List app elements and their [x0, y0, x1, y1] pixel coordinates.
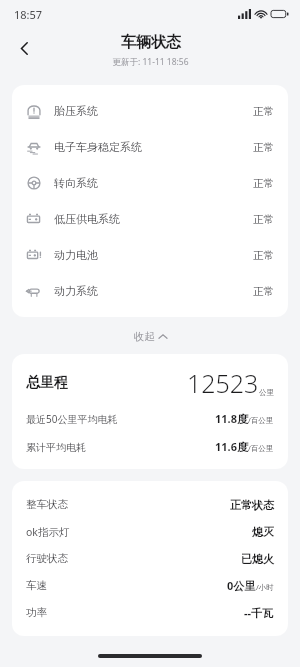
button[interactable]: 累计平均电耗 [12, 439, 288, 454]
staticText: /百公里 [248, 443, 274, 453]
staticText: 已熄火 [241, 552, 274, 566]
staticText: 正常 [253, 177, 274, 190]
staticText: 正常状态 [230, 498, 274, 512]
staticText: 功率 [26, 606, 47, 619]
staticText: --千瓦 [244, 605, 274, 620]
staticText: 整车状态 [26, 498, 68, 511]
staticText: /小时 [256, 582, 274, 592]
staticText: 最近50公里平均电耗 [26, 412, 118, 426]
staticText: 总里程 [26, 374, 68, 392]
button[interactable]: 最近50公里平均电耗 [12, 411, 288, 426]
staticText: 11.6度 [215, 439, 248, 454]
staticText: 11.8度 [215, 411, 248, 426]
staticText: 转向系统 [54, 176, 98, 190]
button[interactable]: 整车状态 [12, 491, 288, 518]
button[interactable]: 功率 [12, 599, 288, 626]
button[interactable]: 收起 [124, 328, 177, 345]
staticText: 正常 [253, 249, 274, 262]
staticText: ok指示灯 [26, 525, 70, 539]
staticText: 动力电池 [54, 248, 98, 262]
staticText: 正常 [253, 285, 274, 298]
staticText: 动力系统 [54, 284, 98, 298]
button[interactable]: 车速 [12, 572, 288, 599]
button[interactable]: 行驶状态 [12, 545, 288, 572]
button[interactable]: 电子车身稳定系统 [12, 129, 288, 165]
staticText: 更新于: 11-11 18:56 [112, 56, 189, 68]
staticText: 0公里 [227, 578, 256, 593]
staticText: 车辆状态 [121, 33, 181, 52]
staticText: 正常 [253, 213, 274, 226]
staticText: 低压供电系统 [54, 212, 120, 226]
staticText: 18:57 [14, 7, 43, 22]
staticText: 收起 [134, 330, 155, 343]
staticText: 行驶状态 [26, 552, 68, 565]
button[interactable]: Back [5, 29, 43, 67]
staticText: 累计平均电耗 [26, 441, 86, 454]
button[interactable]: 低压供电系统 [12, 201, 288, 237]
button[interactable]: 动力电池 [12, 237, 288, 273]
staticText: 12523 [187, 366, 259, 400]
staticText: 电子车身稳定系统 [54, 140, 142, 154]
button[interactable]: 动力系统 [12, 273, 288, 309]
staticText: 胎压系统 [54, 104, 98, 118]
button[interactable]: 胎压系统 [12, 93, 288, 129]
button[interactable]: 转向系统 [12, 165, 288, 201]
staticText: 正常 [253, 105, 274, 118]
staticText: /百公里 [248, 415, 274, 425]
staticText: 熄灭 [252, 525, 274, 539]
button[interactable]: ok指示灯 [12, 518, 288, 545]
staticText: 公里 [259, 388, 274, 397]
staticText: 车速 [26, 579, 47, 592]
staticText: 正常 [253, 141, 274, 154]
